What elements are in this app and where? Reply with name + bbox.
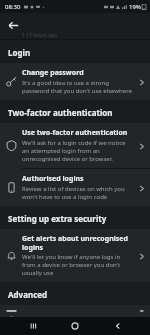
button[interactable]: See recent emails from Facebook — [0, 305, 150, 317]
staticText: Setting up extra security — [8, 213, 107, 224]
staticText: 1 17 hours ago — [22, 32, 58, 39]
button[interactable]: Authorised logins — [0, 169, 150, 206]
staticText: Two-factor authentication — [8, 107, 113, 118]
button[interactable]: Recents — [23, 317, 43, 335]
button[interactable]: Back — [3, 15, 23, 35]
button[interactable]: Get alerts about unrecognised logins — [0, 229, 150, 282]
button[interactable]: Home — [65, 317, 85, 335]
button[interactable]: Change password — [0, 63, 150, 100]
button[interactable]: Use two-factor authentication — [0, 123, 150, 168]
staticText: We'll ask for a login code if we notice … — [22, 139, 133, 163]
staticText: 19% — [129, 3, 141, 11]
staticText: We'll let you know if anyone logs in fro… — [22, 253, 133, 277]
staticText: Get alerts about unrecognised logins — [22, 234, 133, 252]
staticText: Advanced — [8, 289, 48, 300]
staticText: Use two-factor authentication — [22, 128, 128, 138]
staticText: Change password — [22, 68, 84, 78]
button[interactable]: Back — [108, 317, 128, 335]
staticText: Login — [8, 47, 31, 58]
staticText: Authorised logins — [22, 174, 84, 184]
staticText: Review a list of devices on which you wo… — [22, 185, 133, 201]
staticText: 08:30 — [5, 3, 21, 11]
staticText: It's a good idea to use a strong passwor… — [22, 79, 133, 95]
